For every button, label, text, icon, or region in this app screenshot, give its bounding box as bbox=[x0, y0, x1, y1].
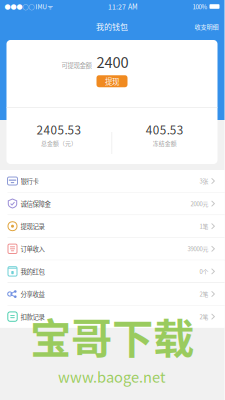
button[interactable]: 诚信保障金 bbox=[0, 193, 224, 215]
staticText: 银行卡 bbox=[20, 176, 38, 186]
staticText: 1笔 bbox=[199, 222, 208, 230]
button[interactable]: 分享收益 bbox=[0, 283, 224, 305]
staticText: 2400 bbox=[96, 51, 128, 72]
staticText: 提现记录 bbox=[20, 222, 44, 231]
staticText: 2405.53 bbox=[36, 121, 81, 138]
button[interactable]: 订单收入 bbox=[0, 238, 224, 260]
button[interactable]: 银行卡 bbox=[0, 170, 224, 192]
staticText: 宝哥下载 bbox=[30, 306, 194, 366]
staticText: 我的钱包 bbox=[96, 21, 128, 32]
staticText: 提现 bbox=[105, 76, 119, 87]
button[interactable]: 提现 bbox=[96, 75, 127, 87]
staticText: 2笔 bbox=[199, 290, 208, 298]
staticText: ●●●○○ IMU ᯤ bbox=[4, 2, 53, 11]
staticText: 3张 bbox=[199, 177, 208, 185]
button[interactable]: 我的红包 bbox=[0, 260, 224, 282]
staticText: 可提现金额 bbox=[61, 60, 91, 70]
staticText: 39000元 bbox=[187, 245, 208, 253]
staticText: 405.53 bbox=[146, 121, 184, 138]
staticText: 11:27 AM bbox=[108, 1, 138, 11]
staticText: 扣款记录 bbox=[20, 312, 44, 321]
staticText: 总金额（元） bbox=[41, 139, 77, 147]
staticText: 收支明细 bbox=[194, 22, 218, 31]
button[interactable]: 提现记录 bbox=[0, 215, 224, 237]
staticText: 100% bbox=[192, 2, 207, 11]
staticText: www.baoge.net bbox=[58, 366, 166, 387]
staticText: 分享收益 bbox=[20, 289, 44, 299]
staticText: 2笔 bbox=[199, 312, 208, 321]
staticText: 订单收入 bbox=[20, 244, 44, 253]
staticText: 2000元 bbox=[190, 199, 208, 208]
button[interactable]: 扣款记录 bbox=[0, 306, 224, 328]
staticText: 冻结金额 bbox=[153, 139, 177, 147]
button[interactable]: 收支明细 bbox=[191, 17, 221, 36]
staticText: 我的红包 bbox=[20, 267, 44, 276]
staticText: 0个 bbox=[199, 267, 208, 276]
staticText: 诚信保障金 bbox=[20, 199, 50, 208]
